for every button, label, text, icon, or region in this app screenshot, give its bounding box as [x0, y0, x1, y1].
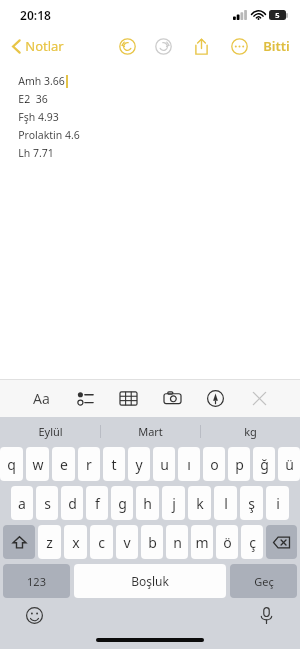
- staticText: g: [118, 494, 127, 513]
- button[interactable]: Bitti: [260, 33, 293, 59]
- staticText: Lh 7.71: [18, 146, 54, 160]
- staticText: e: [60, 455, 68, 474]
- button[interactable]: r: [78, 447, 100, 481]
- staticText: s: [44, 494, 51, 513]
- staticText: k: [196, 494, 204, 513]
- button[interactable]: Undo: [116, 35, 138, 57]
- staticText: r: [86, 455, 92, 474]
- button[interactable]: j: [162, 486, 185, 520]
- button[interactable]: e: [52, 447, 75, 481]
- staticText: f: [95, 494, 100, 513]
- button[interactable]: s: [36, 486, 58, 520]
- button[interactable]: Markup: [200, 383, 230, 413]
- button[interactable]: n: [166, 525, 188, 559]
- button[interactable]: Shift: [3, 525, 35, 559]
- button[interactable]: u: [153, 447, 175, 481]
- staticText: p: [235, 455, 244, 474]
- button[interactable]: v: [116, 525, 138, 559]
- staticText: Notlar: [25, 37, 64, 55]
- button[interactable]: Close: [244, 383, 274, 413]
- staticText: Bitti: [263, 37, 290, 55]
- button[interactable]: Aa: [26, 383, 56, 413]
- button[interactable]: Boşluk: [74, 564, 226, 598]
- button[interactable]: i: [266, 486, 289, 520]
- staticText: x: [72, 533, 80, 552]
- staticText: u: [160, 455, 169, 474]
- staticText: ü: [285, 455, 294, 474]
- button[interactable]: m: [191, 525, 213, 559]
- button[interactable]: Checklist: [70, 383, 100, 413]
- button[interactable]: h: [136, 486, 159, 520]
- staticText: ö: [223, 533, 232, 552]
- button[interactable]: q: [0, 447, 23, 481]
- staticText: Fşh 4.93: [18, 110, 59, 124]
- button[interactable]: x: [64, 525, 87, 559]
- staticText: kg: [244, 424, 257, 439]
- staticText: o: [210, 455, 219, 474]
- staticText: E2 36: [18, 92, 48, 106]
- staticText: c: [98, 533, 105, 552]
- staticText: ğ: [260, 455, 269, 474]
- staticText: a: [18, 494, 26, 513]
- button[interactable]: Notlar: [8, 34, 68, 58]
- button[interactable]: g: [111, 486, 133, 520]
- button[interactable]: c: [90, 525, 113, 559]
- staticText: z: [46, 533, 53, 552]
- button[interactable]: ş: [240, 486, 263, 520]
- staticText: Eylül: [38, 424, 63, 439]
- button[interactable]: b: [141, 525, 163, 559]
- staticText: h: [143, 494, 152, 513]
- staticText: l: [224, 494, 228, 513]
- button[interactable]: Eylül: [0, 417, 100, 445]
- staticText: Prolaktin 4.6: [18, 128, 80, 142]
- button[interactable]: ü: [278, 447, 300, 481]
- button[interactable]: Mart: [101, 417, 200, 445]
- button[interactable]: Geç: [230, 564, 297, 598]
- staticText: Geç: [254, 574, 274, 589]
- button[interactable]: 123: [3, 564, 70, 598]
- button[interactable]: d: [61, 486, 83, 520]
- button[interactable]: p: [228, 447, 250, 481]
- button[interactable]: Camera: [157, 383, 187, 413]
- staticText: ç: [249, 533, 256, 552]
- button[interactable]: ç: [241, 525, 263, 559]
- staticText: Boşluk: [131, 573, 169, 589]
- button[interactable]: More: [228, 35, 250, 57]
- staticText: n: [173, 533, 182, 552]
- staticText: ı: [187, 455, 191, 474]
- staticText: d: [68, 494, 77, 513]
- button[interactable]: Dictation: [254, 603, 278, 627]
- button[interactable]: ı: [178, 447, 200, 481]
- staticText: b: [148, 533, 157, 552]
- button[interactable]: kg: [201, 417, 300, 445]
- staticText: i: [276, 494, 280, 513]
- staticText: m: [195, 533, 209, 552]
- button[interactable]: l: [214, 486, 237, 520]
- staticText: Mart: [138, 424, 163, 439]
- button[interactable]: w: [26, 447, 49, 481]
- button[interactable]: a: [11, 486, 33, 520]
- staticText: q: [7, 455, 16, 474]
- button[interactable]: Share: [190, 35, 212, 57]
- button[interactable]: z: [38, 525, 61, 559]
- staticText: y: [135, 455, 143, 474]
- button[interactable]: ğ: [253, 447, 275, 481]
- button[interactable]: ö: [216, 525, 238, 559]
- button[interactable]: y: [128, 447, 150, 481]
- staticText: v: [123, 533, 131, 552]
- button[interactable]: Table: [113, 383, 143, 413]
- button[interactable]: Backspace: [266, 525, 297, 559]
- staticText: w: [32, 455, 44, 474]
- button[interactable]: k: [188, 486, 211, 520]
- staticText: Amh 3.66: [18, 74, 65, 88]
- button[interactable]: Redo: [152, 35, 174, 57]
- button[interactable]: f: [86, 486, 108, 520]
- staticText: ş: [248, 494, 255, 513]
- staticText: 123: [27, 574, 46, 589]
- staticText: j: [172, 494, 176, 513]
- button[interactable]: o: [203, 447, 225, 481]
- button[interactable]: Emoji: [22, 603, 46, 627]
- staticText: 5: [275, 10, 280, 20]
- staticText: t: [111, 455, 117, 474]
- button[interactable]: t: [103, 447, 125, 481]
